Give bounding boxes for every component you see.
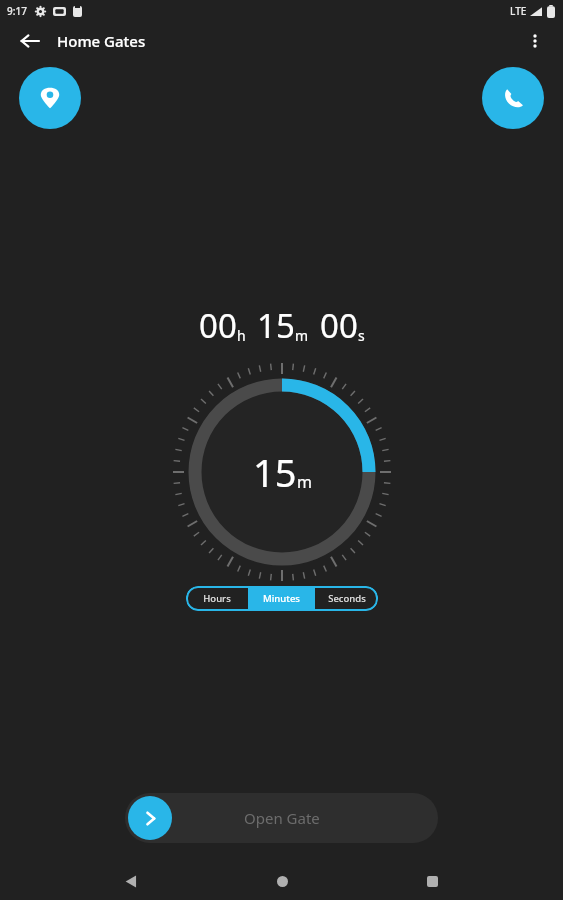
staticText: h [237,326,246,345]
staticText: Minutes [263,592,300,605]
staticText: 00 [320,303,358,348]
button[interactable]: More options [517,23,553,59]
staticText: s [358,326,365,345]
button[interactable]: Hours [186,586,248,611]
button[interactable]: Location [19,67,81,129]
button[interactable]: Minutes [250,586,313,611]
button[interactable]: Recents [412,862,452,900]
staticText: m [295,326,309,345]
button[interactable]: Back [111,862,151,900]
staticText: Hours [203,592,231,605]
staticText: m [297,471,312,493]
button[interactable]: Back [12,23,48,59]
staticText: Home Gates [57,31,146,51]
staticText: LTE [510,4,527,18]
staticText: 9:17 [7,4,27,18]
staticText: Seconds [328,592,366,605]
staticText: 15 [257,303,295,348]
other: Slide to open gate [128,796,172,840]
staticText: 15 [253,446,297,498]
button[interactable]: Call [482,67,544,129]
button[interactable]: Home [262,862,302,900]
staticText: 00 [199,303,237,348]
button[interactable]: Seconds [315,586,378,611]
button[interactable]: Open Gate [125,793,438,843]
staticText: Open Gate [244,808,320,828]
